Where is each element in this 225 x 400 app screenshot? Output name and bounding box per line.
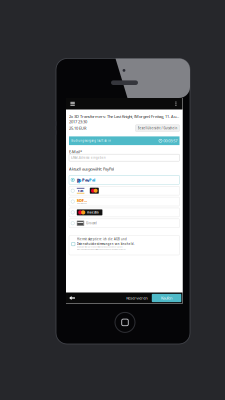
staticText: E-Mail-Adresse eingeben: [71, 156, 106, 159]
staticText: 2x 3D Transformers: The Last Knight, (Mo…: [69, 114, 179, 119]
staticText: Buchungsvorgang läuft ab in: [71, 139, 111, 142]
staticText: Aktuell ausgewählt: PayPal: [69, 166, 114, 172]
staticText: Hiermit akzeptiere ich die AGB und: [77, 237, 127, 241]
staticText: 2017 23:30: [69, 119, 87, 124]
button[interactable]: Kaufen: [152, 294, 181, 302]
staticText: maestro: [87, 211, 99, 214]
staticText: 00:03:57: [163, 138, 177, 143]
staticText: VISA: [78, 189, 84, 192]
staticText: Bei Fragen wenden Sie sich bitte an den …: [77, 249, 126, 250]
staticText: Pay: [82, 177, 89, 182]
button[interactable]: Bestellübersicht / Gutschein: [135, 125, 179, 131]
button[interactable]: SOFORT: [69, 197, 179, 206]
staticText: Reservieren: [126, 295, 147, 301]
button[interactable]: Zurück: [66, 292, 78, 303]
staticText: P: [78, 178, 81, 185]
button[interactable]: P: [69, 175, 179, 184]
button[interactable]: AGB akzeptieren: [72, 242, 75, 246]
staticText: Datenschutzbestimmungen von kinoheld.: [77, 242, 135, 246]
button[interactable]: VISA: [69, 186, 179, 195]
staticText: Bestellübersicht / Gutschein: [137, 126, 177, 130]
staticText: E-Mail*: [69, 149, 82, 154]
button[interactable]: Girocard: [69, 219, 179, 228]
staticText: P: [77, 177, 80, 184]
button[interactable]: Mehr: [171, 98, 181, 109]
button[interactable]: maestro: [69, 208, 179, 217]
staticText: Überweisung: [77, 203, 87, 204]
staticText: Pal: [89, 177, 95, 182]
button[interactable]: E-Mail-Adresse eingeben: [69, 154, 179, 161]
staticText: SOFORT: [77, 198, 88, 203]
staticText: Girocard: [86, 221, 97, 225]
staticText: Hinweis: Hiermit erklären Sie sich mit d…: [77, 246, 123, 248]
button[interactable]: Menü: [68, 98, 78, 109]
staticText: 25.10 EUR: [69, 125, 86, 131]
staticText: Kaufen: [161, 295, 172, 301]
button[interactable]: Reservieren: [124, 292, 149, 303]
